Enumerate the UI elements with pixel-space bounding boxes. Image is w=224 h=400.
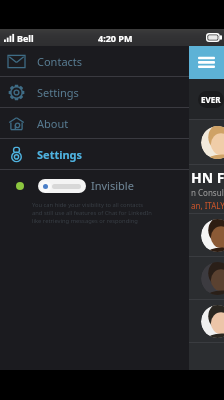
staticText: You can hide your visibility to all cont…	[32, 201, 152, 225]
button[interactable]: HN FR	[189, 165, 224, 213]
button[interactable]	[189, 120, 224, 164]
staticText: Settings	[37, 85, 79, 100]
button[interactable]: Settings	[0, 139, 189, 169]
staticText: n Consultan	[191, 187, 224, 198]
button[interactable]: Contacts	[0, 46, 189, 76]
staticText: Bell	[17, 32, 34, 44]
staticText: an, ITALY	[191, 200, 224, 211]
button[interactable]: Invisible	[0, 170, 189, 201]
button[interactable]: Open navigation menu	[189, 46, 224, 79]
button[interactable]: About	[0, 108, 189, 138]
staticText: Invisible	[91, 178, 134, 193]
button[interactable]	[189, 257, 224, 299]
button[interactable]	[189, 300, 224, 342]
staticText: 4:20 PM	[98, 32, 133, 44]
staticText: Settings	[37, 147, 83, 162]
button[interactable]	[189, 214, 224, 256]
button[interactable]: EVER	[198, 91, 224, 108]
button[interactable]: Settings	[0, 77, 189, 107]
staticText: HN FR	[191, 168, 224, 187]
staticText: EVER	[201, 94, 221, 105]
staticText: About	[37, 116, 69, 131]
staticText: Contacts	[37, 54, 83, 69]
